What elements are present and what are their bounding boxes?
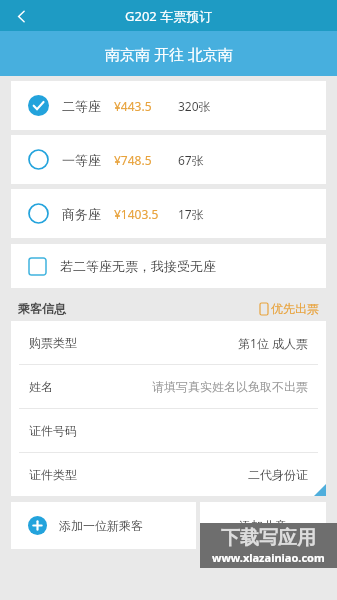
button[interactable]: 商务座 [11,189,326,238]
staticText: www.xlazainiao.com [212,550,325,565]
button[interactable]: Back [6,1,36,31]
staticText: 姓名 [29,379,53,394]
staticText: 若二等座无票，我接受无座 [60,258,216,274]
button[interactable]: 优先出票 [260,301,319,316]
staticText: ¥443.5 [114,98,178,114]
staticText: 购票类型 [29,335,77,350]
staticText: 乘客信息 [18,301,66,316]
button[interactable]: 购票类型 [11,321,326,364]
button[interactable]: 一等座 [11,135,326,184]
button[interactable]: 姓名 [11,365,326,408]
button[interactable]: 二等座 [11,81,326,130]
button[interactable]: 证件类型 [11,453,326,496]
staticText: 67张 [178,152,204,168]
staticText: 320张 [178,98,211,114]
staticText: 第1位 成人票 [238,335,308,351]
button[interactable]: 证件号码 [11,409,326,452]
staticText: 商务座 [62,206,101,222]
staticText: 二代身份证 [248,467,308,482]
staticText: 优先出票 [271,301,319,316]
staticText: 一等座 [62,152,101,168]
button[interactable]: 若二等座无票，我接受无座 [11,244,326,288]
staticText: ¥748.5 [114,152,178,168]
staticText: 证件号码 [29,423,77,438]
staticText: 请填写真实姓名以免取不出票 [152,379,308,394]
staticText: 南京南 开往 北京南 [105,44,233,64]
staticText: 二等座 [62,98,101,114]
staticText: 下载写应用 [221,526,316,550]
button[interactable]: 添加儿童 [200,502,326,549]
staticText: 证件类型 [29,467,77,482]
button[interactable]: 添加一位新乘客 [11,502,196,549]
staticText: 添加一位新乘客 [59,518,143,533]
staticText: 添加儿童 [239,518,287,533]
staticText: 17张 [178,206,204,222]
staticText: G202 车票预订 [125,7,213,25]
staticText: ¥1403.5 [114,206,178,222]
